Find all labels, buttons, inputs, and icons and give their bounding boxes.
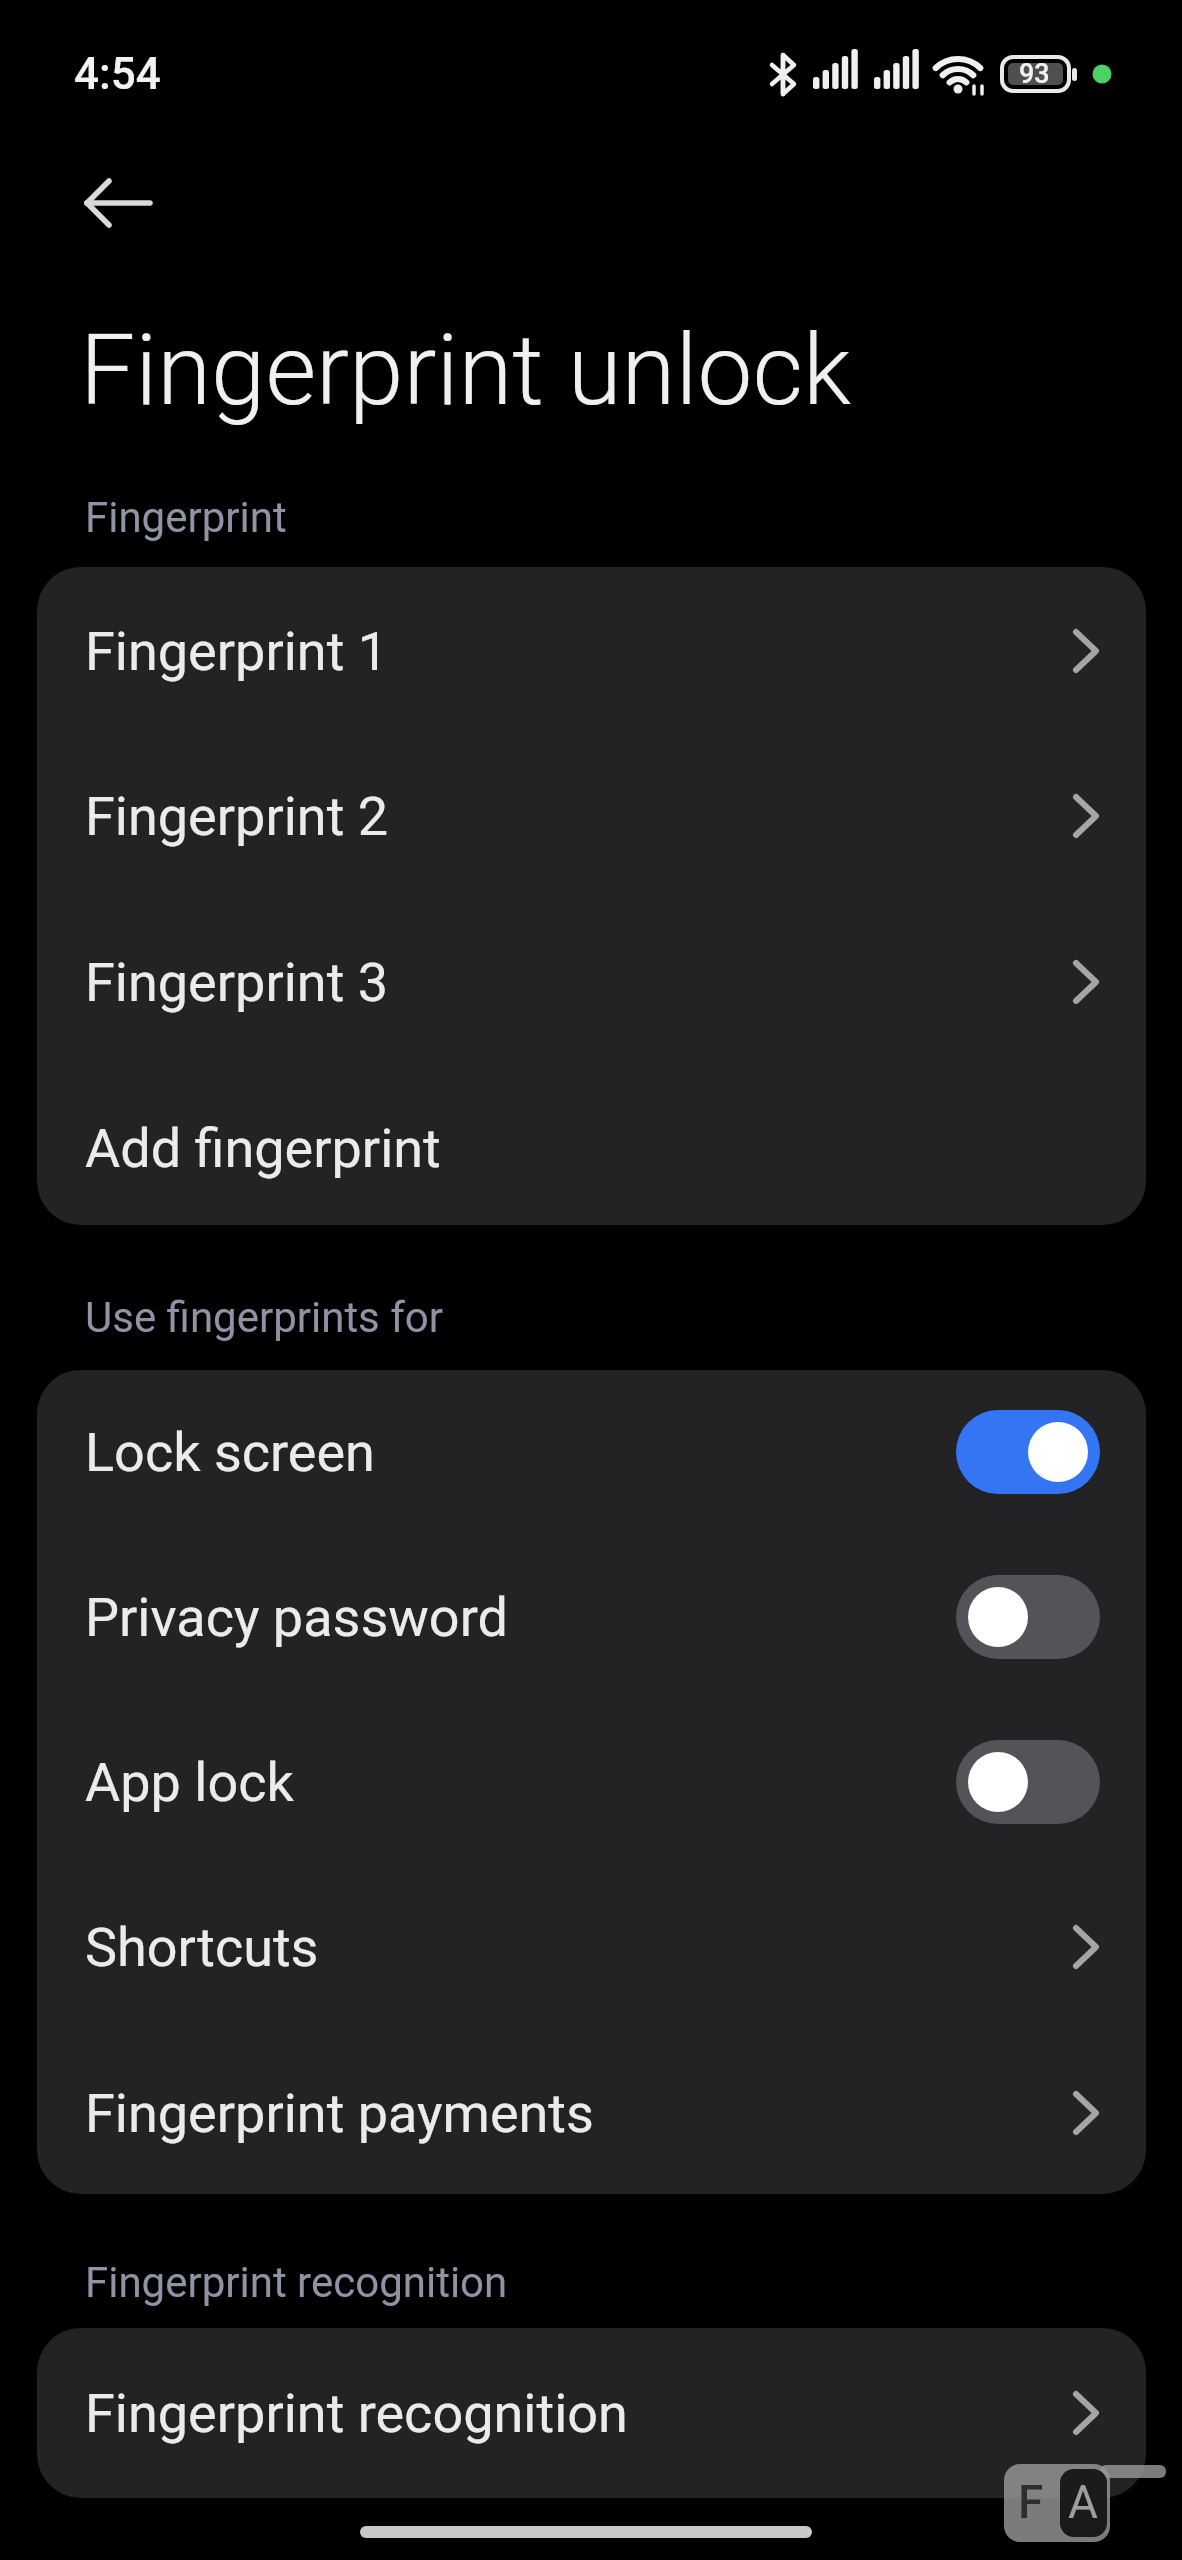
button[interactable] (956, 1740, 1100, 1824)
button[interactable] (956, 1575, 1100, 1659)
staticText: Fingerprint 3 (85, 951, 389, 1014)
button[interactable]: Shortcuts (37, 1865, 1146, 2029)
button[interactable] (956, 1410, 1100, 1494)
button[interactable]: F (1004, 2464, 1182, 2542)
button[interactable]: Fingerprint recognition (37, 2331, 1146, 2495)
button[interactable]: Lock screen (37, 1370, 1146, 1534)
staticText: Fingerprint payments (85, 2082, 594, 2145)
button[interactable]: App lock (37, 1700, 1146, 1864)
staticText: 93 (1019, 58, 1050, 90)
staticText: Privacy password (85, 1586, 508, 1649)
staticText: Add fingerprint (85, 1117, 441, 1180)
staticText: F (1018, 2475, 1044, 2529)
staticText: Fingerprint (85, 493, 287, 542)
staticText: A (1068, 2475, 1099, 2529)
staticText: App lock (85, 1751, 294, 1814)
staticText: Use fingerprints for (85, 1293, 444, 1342)
button[interactable]: Fingerprint 2 (37, 734, 1146, 898)
staticText: Lock screen (85, 1421, 375, 1484)
staticText: Fingerprint recognition (85, 2382, 628, 2445)
staticText: Fingerprint unlock (80, 313, 851, 428)
button[interactable]: Add fingerprint (37, 1066, 1146, 1230)
button[interactable] (60, 160, 180, 250)
staticText: Shortcuts (85, 1916, 319, 1979)
staticText: Fingerprint recognition (85, 2258, 508, 2307)
staticText: Fingerprint 2 (85, 785, 389, 848)
button[interactable]: Fingerprint payments (37, 2031, 1146, 2195)
staticText: 4:54 (74, 48, 161, 100)
staticText: Fingerprint 1 (85, 620, 389, 683)
button[interactable]: Privacy password (37, 1535, 1146, 1699)
button[interactable]: Fingerprint 3 (37, 900, 1146, 1064)
button[interactable]: Fingerprint 1 (37, 569, 1146, 733)
